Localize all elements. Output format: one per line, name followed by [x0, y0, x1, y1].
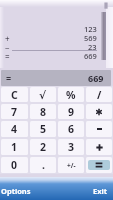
staticText: +/- — [67, 161, 76, 170]
staticText: 1 — [11, 140, 18, 154]
button[interactable]: 8 — [30, 104, 56, 119]
staticText: % — [66, 88, 76, 102]
staticText: 669 — [88, 72, 104, 84]
staticText: 9 — [68, 105, 75, 119]
button[interactable]: 5 — [30, 121, 56, 137]
button[interactable] — [86, 104, 112, 119]
staticText: C — [11, 88, 18, 102]
button[interactable]: / — [86, 87, 112, 102]
staticText: 4 — [11, 122, 18, 136]
staticText: 569 — [84, 33, 97, 42]
button[interactable]: 6 — [58, 121, 84, 137]
button[interactable]: Exit — [93, 186, 108, 196]
button[interactable]: 9 — [58, 104, 84, 119]
button[interactable]: 3 — [58, 139, 84, 155]
staticText: √ — [39, 89, 47, 101]
staticText: − — [5, 42, 10, 51]
button[interactable]: 0 — [1, 157, 28, 173]
staticText: 8 — [40, 105, 47, 119]
staticText: 3 — [68, 140, 75, 154]
button[interactable]: . — [30, 157, 56, 173]
staticText: 2 — [40, 140, 47, 154]
staticText: . — [42, 158, 45, 172]
button[interactable]: % — [58, 87, 84, 102]
button[interactable]: 7 — [1, 104, 28, 119]
button[interactable]: Options — [1, 186, 31, 196]
staticText: 7 — [11, 105, 18, 119]
button[interactable]: C — [1, 87, 28, 102]
button[interactable]: 1 — [1, 139, 28, 155]
staticText: / — [97, 88, 102, 102]
button[interactable]: 2 — [30, 139, 56, 155]
staticText: = — [6, 72, 12, 84]
button[interactable] — [86, 121, 112, 137]
staticText: 23 — [88, 42, 97, 51]
staticText: 0 — [11, 158, 18, 172]
button[interactable] — [86, 157, 112, 173]
button[interactable]: +/- — [58, 157, 84, 173]
button[interactable]: √ — [30, 87, 56, 102]
staticText: + — [5, 33, 10, 42]
staticText: = — [5, 51, 10, 60]
button[interactable] — [86, 139, 112, 155]
staticText: 669 — [84, 51, 97, 60]
staticText: 6 — [68, 122, 75, 136]
staticText: 5 — [40, 122, 47, 136]
button[interactable]: 4 — [1, 121, 28, 137]
other: Battery — [102, 0, 110, 10]
staticText: 123 — [84, 24, 97, 33]
